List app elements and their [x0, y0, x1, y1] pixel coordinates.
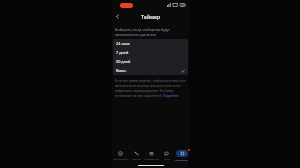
staticText: Чаты	[164, 157, 170, 160]
button[interactable]: Звонки	[128, 148, 144, 163]
button[interactable]: 24 часа	[113, 39, 188, 48]
staticText: Звонки	[132, 157, 141, 160]
button[interactable]: Выкл.	[113, 66, 188, 75]
staticText: 7 дней	[116, 50, 129, 55]
staticText: Подробнее	[163, 94, 179, 98]
staticText: Выберите, когда сообщения будут	[115, 27, 170, 31]
button[interactable]: Подробнее	[163, 94, 179, 98]
staticText: Выкл.	[116, 68, 127, 73]
staticText: Сообщества	[144, 157, 159, 160]
button[interactable]: 7 дней	[113, 48, 188, 57]
button[interactable]: Настройки	[174, 148, 189, 163]
staticText: Если этот режим включён, сообщения в это…	[115, 79, 186, 83]
button[interactable]: Обновления	[112, 148, 128, 163]
button[interactable]: 90 дней	[113, 57, 188, 66]
button[interactable]: Чаты	[159, 148, 174, 163]
staticText: выбранного периода времени. Это также	[115, 89, 174, 93]
staticText: автоматически исчезнут для всех в чате п…	[115, 84, 181, 88]
staticText: Обновления	[113, 157, 128, 160]
staticText: Таймер	[141, 13, 161, 20]
staticText: Настройки	[175, 158, 188, 161]
button[interactable]: Сообщества	[144, 148, 159, 163]
staticText: не повлияет на уже сохранённое.	[115, 94, 163, 98]
staticText: автоматически удаляться	[115, 32, 157, 36]
staticText: 24 часа	[116, 41, 130, 46]
staticText: 90 дней	[116, 59, 131, 64]
button[interactable]: Back	[112, 11, 123, 22]
